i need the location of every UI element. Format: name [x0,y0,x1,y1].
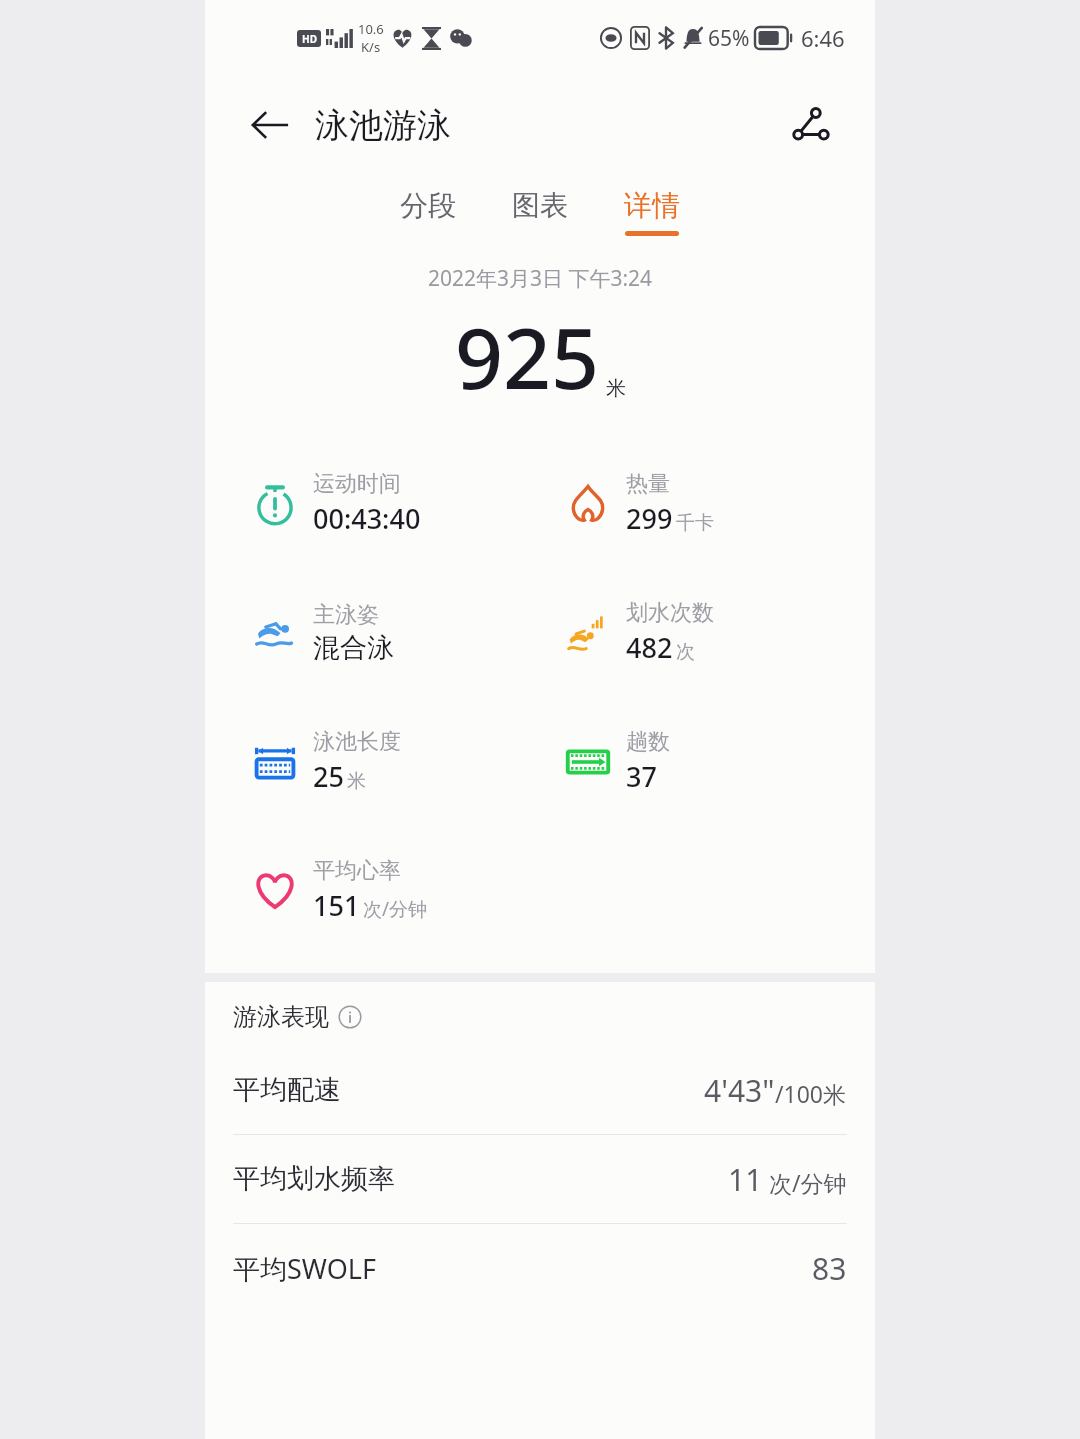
button[interactable]: Share [779,93,843,157]
staticText: 次/分钟 [763,1167,847,1198]
staticText: 次 [676,640,695,664]
staticText: 00:43:40 [313,500,421,537]
staticText: 千卡 [676,511,714,535]
staticText: 65% [708,24,750,53]
staticText: 925 [455,299,600,413]
staticText: 平均心率 [313,857,401,885]
button[interactable]: 图表 [502,182,578,242]
button[interactable]: 泳池长度 [205,697,540,826]
button[interactable]: 平均划水频率 [205,1135,875,1224]
button[interactable]: 详情 [614,182,690,242]
staticText: 混合泳 [313,631,394,665]
staticText: 图表 [512,188,568,223]
button[interactable]: 主泳姿 [205,568,540,697]
button[interactable]: 运动时间 [205,439,540,568]
staticText: 25 [313,758,344,795]
staticText: 泳池游泳 [315,104,451,147]
button[interactable]: 划水次数 [540,568,875,697]
staticText: 6:46 [801,23,845,53]
staticText: 10.6 [358,20,384,38]
staticText: 2022年3月3日 下午3:24 [205,264,875,293]
staticText: 泳池长度 [313,728,401,756]
staticText: 热量 [626,470,670,498]
staticText: 划水次数 [626,599,714,627]
staticText: 平均划水频率 [233,1162,395,1196]
staticText: HD [302,32,317,46]
staticText: 米 [347,769,366,793]
button[interactable]: 分段 [390,182,466,242]
staticText: 4'43" [704,1070,775,1111]
staticText: 11 [728,1159,763,1200]
button[interactable]: 平均配速 [205,1046,875,1135]
button[interactable]: 平均SWOLF [205,1224,875,1312]
button[interactable]: Back [241,96,299,154]
staticText: /100米 [775,1078,847,1109]
staticText: 详情 [624,188,680,223]
staticText: 37 [626,758,657,795]
staticText: 平均配速 [233,1073,341,1107]
staticText: 运动时间 [313,470,401,498]
button[interactable]: 热量 [540,439,875,568]
staticText: 83 [812,1248,847,1289]
staticText: K/s [361,38,381,56]
staticText: 趟数 [626,728,670,756]
staticText: 分段 [400,188,456,223]
staticText: 主泳姿 [313,601,379,629]
staticText: 151 [313,887,360,924]
button[interactable]: 平均心率 [205,826,540,955]
staticText: 次/分钟 [363,896,428,922]
staticText: 482 [626,629,673,666]
staticText: 米 [606,376,626,401]
staticText: 平均SWOLF [233,1250,376,1287]
staticText: 游泳表现 [233,1002,329,1032]
staticText: 299 [626,500,673,537]
button[interactable]: 趟数 [540,697,875,826]
